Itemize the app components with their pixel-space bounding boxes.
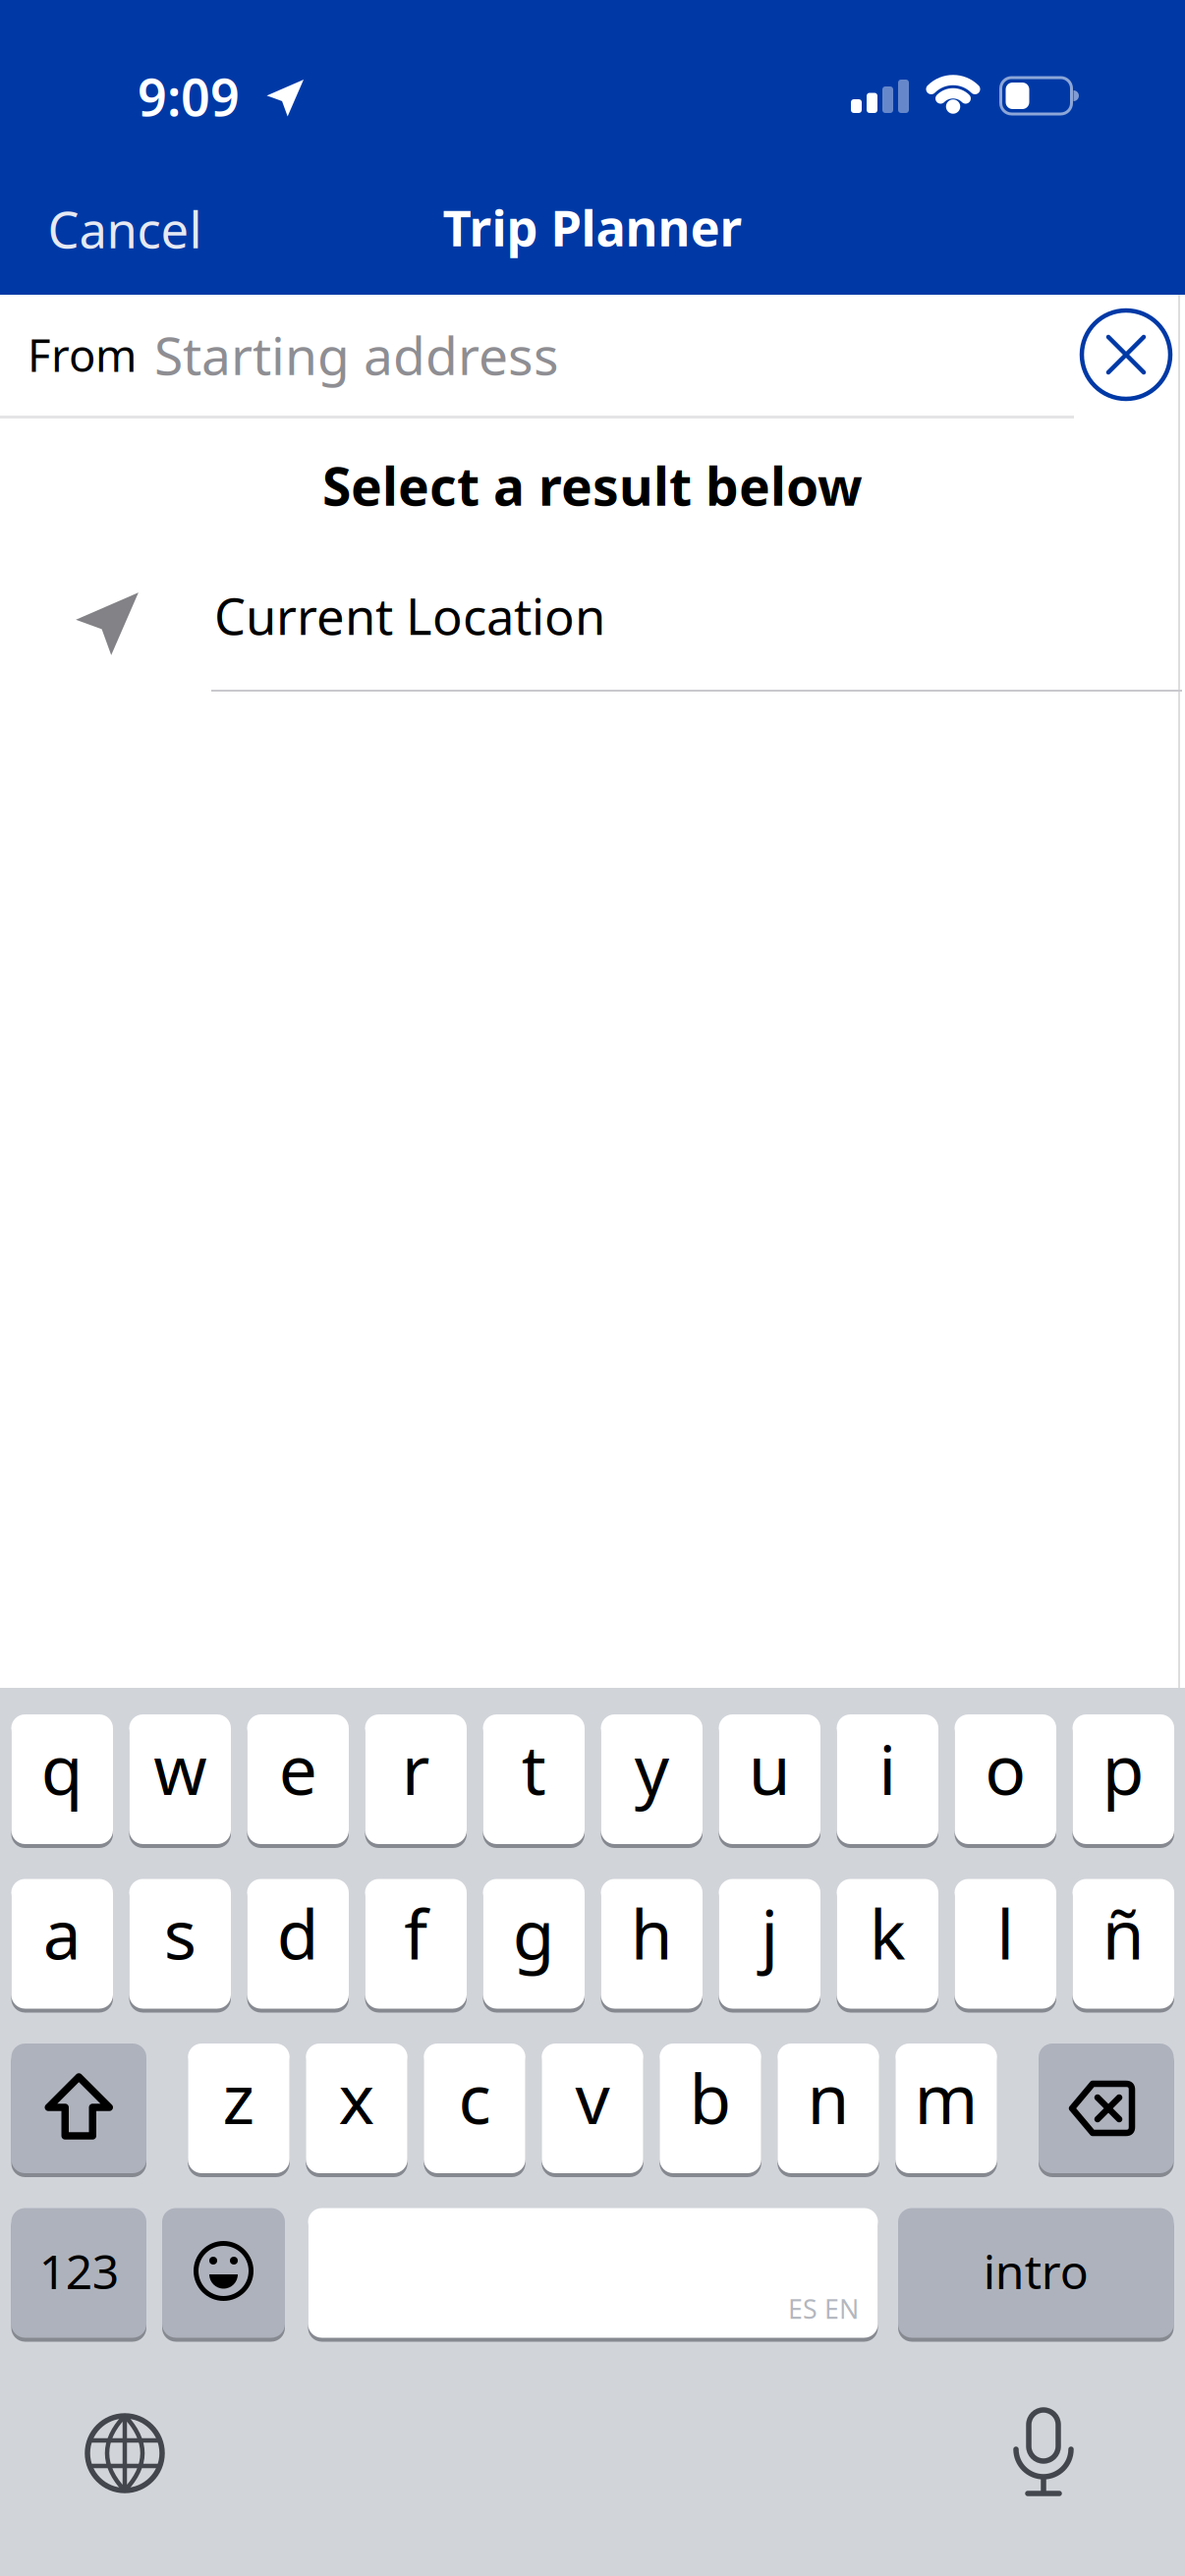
staticText: t — [522, 1723, 546, 1814]
staticText: Starting address — [154, 320, 559, 389]
staticText: k — [869, 1888, 906, 1978]
staticText: Trip Planner — [443, 194, 742, 260]
button[interactable]: z — [188, 2042, 290, 2175]
button[interactable]: i — [837, 1712, 938, 1846]
button[interactable]: j — [719, 1877, 820, 2011]
button[interactable]: o — [955, 1712, 1056, 1846]
button[interactable]: intro — [898, 2206, 1174, 2340]
button[interactable]: x — [306, 2042, 407, 2175]
staticText: From — [28, 325, 137, 384]
staticText: ñ — [1102, 1888, 1145, 1978]
button[interactable]: ñ — [1072, 1877, 1174, 2011]
button[interactable]: s — [129, 1877, 231, 2011]
staticText: c — [458, 2052, 491, 2143]
button[interactable] — [999, 2408, 1088, 2496]
staticText: q — [41, 1723, 83, 1814]
button[interactable]: b — [660, 2042, 761, 2175]
staticText: d — [277, 1888, 319, 1978]
staticText: o — [985, 1723, 1026, 1814]
button[interactable]: v — [542, 2042, 643, 2175]
staticText: j — [761, 1888, 778, 1978]
staticText: r — [402, 1723, 430, 1814]
staticText: h — [631, 1888, 673, 1978]
staticText: e — [279, 1723, 317, 1814]
staticText: b — [689, 2052, 732, 2143]
button[interactable]: e — [247, 1712, 349, 1846]
button[interactable] — [308, 2206, 878, 2340]
staticText: y — [635, 1723, 669, 1814]
staticText: n — [807, 2052, 849, 2143]
staticText: u — [749, 1723, 791, 1814]
button[interactable]: n — [777, 2042, 879, 2175]
button[interactable]: d — [247, 1877, 349, 2011]
button[interactable]: k — [837, 1877, 938, 2011]
staticText: x — [339, 2052, 375, 2143]
staticText: l — [997, 1888, 1014, 1978]
staticText: 9:09 — [138, 62, 240, 130]
button[interactable]: t — [483, 1712, 585, 1846]
staticText: a — [43, 1888, 81, 1978]
staticText: f — [404, 1888, 428, 1978]
button[interactable]: 123 — [11, 2206, 146, 2340]
button[interactable]: y — [601, 1712, 703, 1846]
button[interactable]: q — [11, 1712, 113, 1846]
button[interactable]: Current Location — [39, 551, 1185, 689]
staticText: intro — [983, 2240, 1089, 2302]
button[interactable]: p — [1072, 1712, 1174, 1846]
button[interactable]: h — [601, 1877, 703, 2011]
staticText: i — [879, 1723, 896, 1814]
button[interactable]: c — [424, 2042, 525, 2175]
staticText: m — [914, 2052, 978, 2143]
staticText: p — [1102, 1723, 1145, 1814]
staticText: z — [223, 2052, 255, 2143]
button[interactable]: l — [955, 1877, 1056, 2011]
button[interactable]: g — [483, 1877, 585, 2011]
button[interactable] — [85, 2414, 164, 2492]
button[interactable] — [11, 2042, 146, 2175]
button[interactable]: w — [129, 1712, 231, 1846]
staticText: w — [153, 1723, 207, 1814]
button[interactable]: m — [895, 2042, 997, 2175]
staticText: ES EN — [788, 2291, 859, 2326]
staticText: s — [164, 1888, 196, 1978]
staticText: g — [513, 1888, 555, 1978]
button[interactable]: r — [365, 1712, 467, 1846]
staticText: Current Location — [214, 583, 605, 649]
button[interactable]: a — [11, 1877, 113, 2011]
button[interactable] — [1039, 2042, 1174, 2175]
staticText: v — [575, 2052, 610, 2143]
staticText: Select a result below — [322, 451, 863, 520]
button[interactable] — [162, 2206, 285, 2340]
button[interactable]: Cancel — [48, 196, 202, 262]
staticText: 123 — [39, 2240, 119, 2302]
button[interactable]: f — [365, 1877, 467, 2011]
staticText: Cancel — [48, 196, 202, 262]
button[interactable]: u — [719, 1712, 820, 1846]
button[interactable] — [1082, 310, 1170, 399]
